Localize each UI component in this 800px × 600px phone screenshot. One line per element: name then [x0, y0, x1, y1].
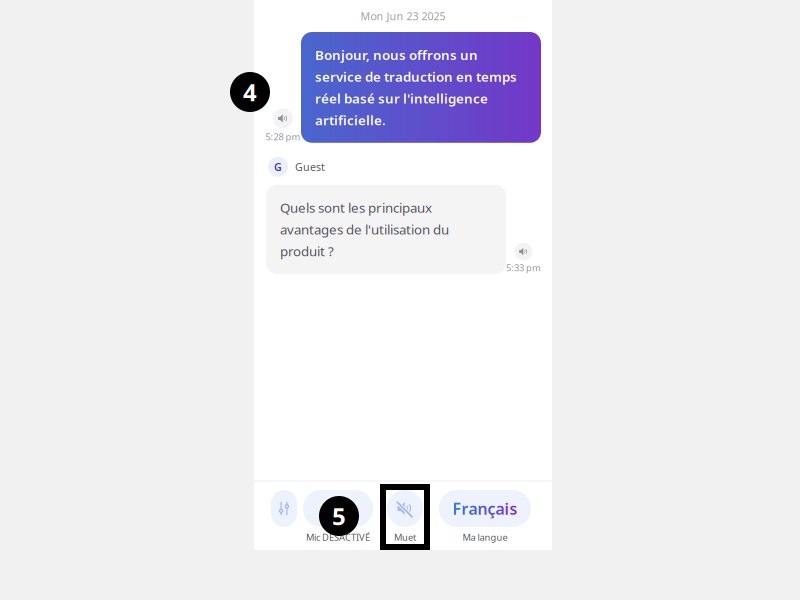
- button[interactable]: Audio settings: [271, 490, 297, 527]
- staticText: 5:28 pm: [265, 130, 300, 143]
- staticText: Mon Jun 23 2025: [360, 9, 445, 23]
- staticText: Muet: [392, 531, 414, 543]
- button[interactable]: Muet: [385, 490, 421, 543]
- staticText: Guest: [295, 160, 325, 174]
- staticText: Muet: [394, 531, 416, 543]
- button[interactable]: Ma langue: [439, 490, 531, 543]
- staticText: 5: [332, 500, 346, 532]
- button[interactable]: Play message audio: [273, 108, 293, 128]
- staticText: 4: [243, 76, 257, 108]
- staticText: Ma langue: [462, 531, 507, 543]
- staticText: 5:33 pm: [506, 261, 541, 274]
- staticText: Mic DÉSACTIVÉ: [306, 531, 370, 543]
- staticText: G: [274, 160, 282, 174]
- staticText: Bonjour, nous offrons un service de trad…: [315, 46, 517, 129]
- button[interactable]: Mic DÉSACTIVÉ: [303, 490, 373, 543]
- staticText: Quels sont les principaux avantages de l…: [280, 199, 449, 260]
